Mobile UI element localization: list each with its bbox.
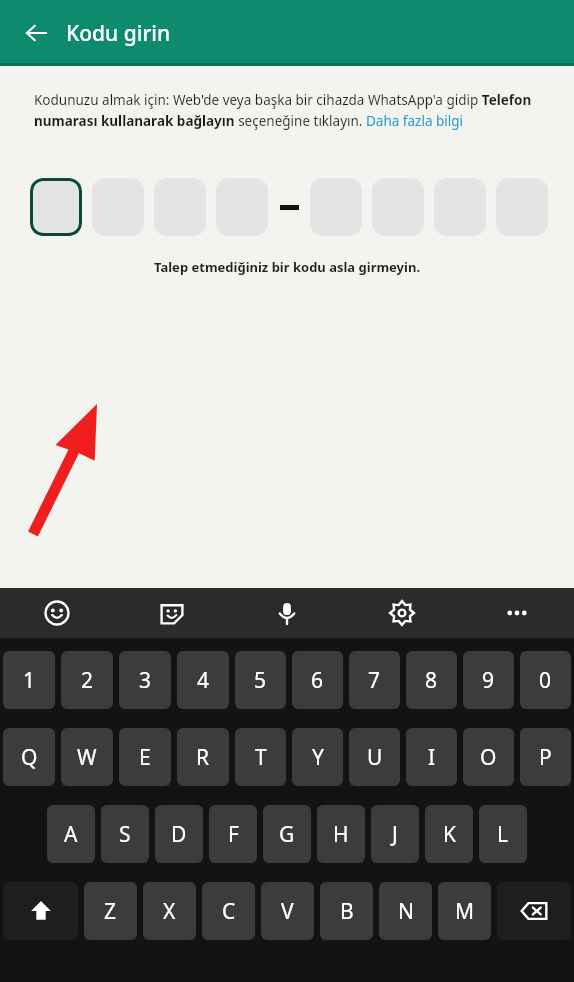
staticText: Y: [312, 743, 324, 772]
button[interactable]: T: [235, 728, 286, 786]
button[interactable]: 9: [463, 651, 514, 709]
staticText: Kodunuzu almak için: Web'de veya başka b…: [34, 91, 540, 130]
button[interactable]: W: [61, 728, 113, 786]
staticText: G: [279, 820, 295, 849]
staticText: B: [340, 897, 354, 926]
staticText: 1: [23, 666, 36, 695]
button[interactable]: 6: [292, 651, 343, 709]
button[interactable]: S: [101, 805, 149, 863]
staticText: X: [163, 897, 176, 926]
button[interactable]: Y: [292, 728, 343, 786]
button[interactable]: G: [263, 805, 311, 863]
button[interactable]: [30, 178, 82, 236]
button[interactable]: [216, 178, 268, 236]
staticText: R: [196, 743, 210, 772]
staticText: D: [171, 820, 187, 849]
button[interactable]: Q: [3, 728, 55, 786]
button[interactable]: Settings: [344, 588, 459, 638]
button[interactable]: Back: [14, 11, 58, 55]
button[interactable]: 2: [61, 651, 113, 709]
staticText: A: [64, 820, 78, 849]
button[interactable]: K: [425, 805, 473, 863]
staticText: Z: [104, 897, 117, 926]
staticText: 7: [368, 666, 381, 695]
button[interactable]: Stickers: [114, 588, 229, 638]
button[interactable]: L: [479, 805, 527, 863]
staticText: 0: [539, 666, 552, 695]
button[interactable]: J: [371, 805, 419, 863]
staticText: T: [255, 743, 267, 772]
staticText: H: [333, 820, 349, 849]
staticText: C: [222, 897, 236, 926]
staticText: O: [480, 743, 497, 772]
button[interactable]: [92, 178, 144, 236]
staticText: 3: [139, 666, 152, 695]
staticText: M: [455, 897, 475, 926]
button[interactable]: X: [143, 882, 196, 940]
staticText: 8: [425, 666, 438, 695]
button[interactable]: Voice input: [229, 588, 344, 638]
staticText: 4: [197, 666, 210, 695]
button[interactable]: P: [520, 728, 571, 786]
button[interactable]: [496, 178, 548, 236]
button[interactable]: H: [317, 805, 365, 863]
button[interactable]: 5: [235, 651, 286, 709]
staticText: Talep etmediğiniz bir kodu asla girmeyin…: [154, 258, 421, 276]
staticText: Q: [21, 743, 38, 772]
button[interactable]: Backspace: [497, 882, 571, 940]
button[interactable]: F: [209, 805, 257, 863]
staticText: S: [119, 820, 131, 849]
button[interactable]: 3: [119, 651, 171, 709]
button[interactable]: Emoji: [0, 588, 114, 638]
button[interactable]: [310, 178, 362, 236]
staticText: J: [392, 820, 398, 849]
button[interactable]: B: [320, 882, 373, 940]
button[interactable]: R: [177, 728, 229, 786]
button[interactable]: I: [406, 728, 457, 786]
button[interactable]: V: [261, 882, 314, 940]
button[interactable]: [154, 178, 206, 236]
staticText: 9: [482, 666, 495, 695]
staticText: F: [228, 820, 239, 849]
staticText: W: [77, 743, 97, 772]
button[interactable]: [434, 178, 486, 236]
staticText: Kodu girin: [66, 19, 171, 48]
button[interactable]: [372, 178, 424, 236]
button[interactable]: U: [349, 728, 400, 786]
staticText: I: [428, 743, 436, 772]
button[interactable]: More options: [459, 588, 574, 638]
staticText: 2: [81, 666, 94, 695]
button[interactable]: C: [202, 882, 255, 940]
button[interactable]: 7: [349, 651, 400, 709]
button[interactable]: 1: [3, 651, 55, 709]
staticText: 6: [311, 666, 324, 695]
staticText: E: [139, 743, 151, 772]
staticText: L: [497, 820, 509, 849]
button[interactable]: M: [438, 882, 491, 940]
staticText: K: [443, 820, 456, 849]
staticText: U: [367, 743, 383, 772]
staticText: V: [281, 897, 294, 926]
button[interactable]: 0: [520, 651, 571, 709]
button[interactable]: Shift: [3, 882, 78, 940]
button[interactable]: A: [47, 805, 95, 863]
button[interactable]: O: [463, 728, 514, 786]
button[interactable]: Z: [84, 882, 137, 940]
button[interactable]: D: [155, 805, 203, 863]
button[interactable]: E: [119, 728, 171, 786]
button[interactable]: N: [379, 882, 432, 940]
staticText: 5: [254, 666, 267, 695]
staticText: N: [398, 897, 414, 926]
button[interactable]: 8: [406, 651, 457, 709]
button[interactable]: 4: [177, 651, 229, 709]
staticText: P: [539, 743, 552, 772]
